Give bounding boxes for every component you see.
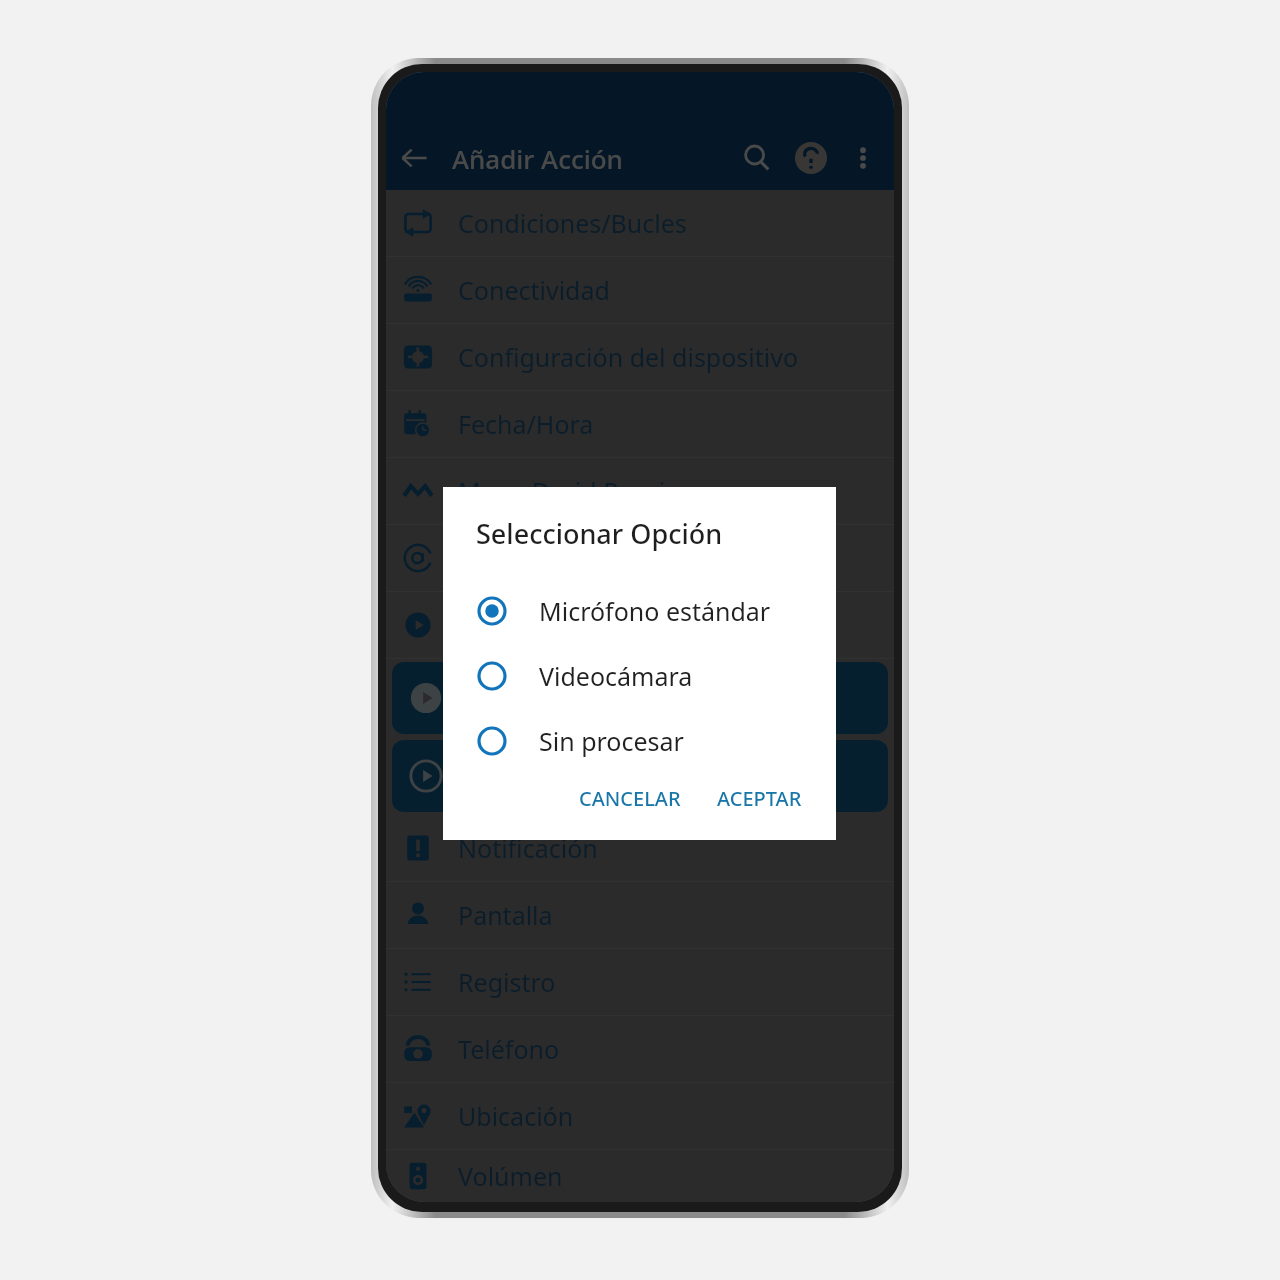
- button[interactable]: Notificación: [386, 815, 894, 881]
- staticText: Mensajería: [458, 541, 588, 575]
- button[interactable]: ACEPTAR: [705, 775, 814, 822]
- button[interactable]: Configuración del dispositivo: [386, 324, 894, 390]
- button[interactable]: Registro: [386, 949, 894, 1015]
- staticText: MacroDroid Propio: [458, 474, 681, 508]
- staticText: Añadir Acción: [452, 141, 623, 176]
- button[interactable]: Fecha/Hora: [386, 391, 894, 457]
- button[interactable]: Grabar micrófono: [392, 662, 888, 734]
- button[interactable]: Ayuda: [784, 131, 838, 185]
- button[interactable]: Micrófono estándar: [443, 578, 836, 643]
- button[interactable]: Sin procesar: [443, 708, 836, 773]
- staticText: Sin procesar: [539, 724, 684, 758]
- staticText: Fecha/Hora: [458, 407, 594, 441]
- staticText: Condiciones/Bucles: [458, 206, 687, 240]
- staticText: Micrófono estándar: [539, 594, 771, 628]
- button[interactable]: Medios: [386, 592, 894, 658]
- button[interactable]: [392, 740, 888, 812]
- button[interactable]: Teléfono: [386, 1016, 894, 1082]
- button[interactable]: Mensajería: [386, 525, 894, 591]
- button[interactable]: Pantalla: [386, 882, 894, 948]
- button[interactable]: Atrás: [386, 130, 442, 186]
- staticText: Medios: [458, 608, 544, 642]
- staticText: Configuración del dispositivo: [458, 340, 799, 374]
- button[interactable]: MacroDroid Propio: [386, 458, 894, 524]
- button[interactable]: Buscar: [730, 131, 784, 185]
- button[interactable]: Más opciones: [838, 133, 888, 183]
- button[interactable]: CANCELAR: [567, 775, 693, 822]
- staticText: Grabar micrófono: [466, 681, 676, 715]
- staticText: Registro: [458, 965, 556, 999]
- staticText: Conectividad: [458, 273, 610, 307]
- staticText: Volúmen: [458, 1159, 563, 1193]
- staticText: ACEPTAR: [717, 785, 802, 812]
- button[interactable]: Volúmen: [386, 1150, 894, 1202]
- staticText: Videocámara: [539, 659, 693, 693]
- staticText: Notificación: [458, 831, 598, 865]
- staticText: CANCELAR: [579, 785, 681, 812]
- button[interactable]: Condiciones/Bucles: [386, 190, 894, 256]
- staticText: Ubicación: [458, 1099, 574, 1133]
- button[interactable]: Ubicación: [386, 1083, 894, 1149]
- staticText: Pantalla: [458, 898, 553, 932]
- staticText: Teléfono: [458, 1032, 560, 1066]
- staticText: Seleccionar Opción: [476, 515, 723, 552]
- button[interactable]: Conectividad: [386, 257, 894, 323]
- button[interactable]: Videocámara: [443, 643, 836, 708]
